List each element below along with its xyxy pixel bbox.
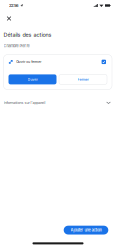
staticText: Ouvrir	[27, 77, 37, 81]
staticText: Ouvrir ou fermer	[16, 60, 41, 64]
staticText: Informations sur l'appareil	[3, 100, 45, 105]
button[interactable]: Informations sur l'appareil	[0, 90, 116, 116]
button[interactable]: Fermer	[59, 74, 107, 84]
button[interactable]: Ajouter une action	[64, 226, 108, 234]
button[interactable]: Activer cette action	[102, 60, 106, 64]
button[interactable]: Ouvrir	[8, 74, 56, 84]
staticText: Détails des actions	[3, 31, 51, 38]
staticText: Ajouter une action	[70, 228, 101, 233]
staticText: Fermer	[77, 77, 88, 81]
staticText: 22:56	[9, 3, 19, 8]
button[interactable]: Fermer	[3, 13, 14, 24]
staticText: Chambre Pierre	[3, 44, 29, 48]
